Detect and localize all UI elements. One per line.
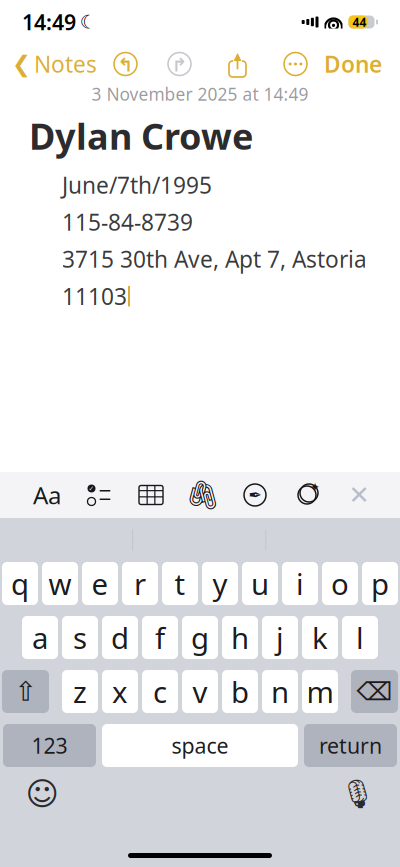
staticText: l — [356, 618, 364, 657]
button[interactable]: ⌫ — [351, 670, 398, 713]
staticText: June/7th/1995 — [62, 170, 212, 200]
button[interactable]: Table — [136, 477, 166, 513]
staticText: 🎙 — [340, 778, 376, 810]
button[interactable]: b — [222, 670, 258, 713]
staticText: Aa — [33, 479, 61, 511]
staticText: 14:49 — [22, 8, 76, 36]
button[interactable]: e — [82, 562, 118, 605]
button[interactable]: Attach — [188, 477, 218, 513]
staticText: m — [306, 672, 333, 711]
staticText: return — [319, 731, 382, 760]
button[interactable]: a — [22, 616, 58, 659]
button[interactable]: Checklist — [84, 477, 114, 513]
staticText: space — [171, 731, 228, 760]
staticText: q — [11, 564, 29, 603]
staticText: t — [174, 564, 185, 603]
staticText: ☺ — [25, 776, 58, 812]
button[interactable]: z — [62, 670, 98, 713]
staticText: ☾ — [80, 11, 97, 33]
staticText: ▲ — [233, 50, 241, 62]
staticText: c — [153, 672, 167, 711]
button[interactable]: q — [2, 562, 38, 605]
button[interactable]: ⇧ — [2, 670, 49, 713]
button[interactable]: n — [262, 670, 298, 713]
staticText: b — [231, 672, 249, 711]
button[interactable]: 123 — [3, 724, 96, 767]
button[interactable]: Format — [32, 477, 62, 513]
staticText: 11103 — [62, 281, 127, 311]
button[interactable]: y — [202, 562, 238, 605]
staticText: y — [212, 564, 227, 603]
staticText: ↰ — [117, 54, 133, 76]
button[interactable]: c — [142, 670, 178, 713]
staticText: f — [155, 618, 165, 657]
button[interactable]: p — [362, 562, 398, 605]
button[interactable]: t — [162, 562, 198, 605]
button[interactable]: i — [282, 562, 318, 605]
button[interactable]: Undo — [107, 51, 143, 77]
staticText: d — [111, 618, 129, 657]
button[interactable]: m — [302, 670, 338, 713]
staticText: k — [312, 618, 328, 657]
staticText: 3 November 2025 at 14:49 — [91, 82, 308, 105]
button[interactable]: ❮ — [0, 43, 97, 85]
staticText: ❮ — [12, 51, 31, 77]
button[interactable]: Redo — [161, 51, 197, 77]
staticText: g — [191, 618, 209, 657]
staticText: a — [32, 618, 48, 657]
button[interactable]: r — [122, 562, 158, 605]
button[interactable]: x — [102, 670, 138, 713]
staticText: ✓ — [88, 485, 94, 492]
staticText: 🖇 — [185, 479, 221, 511]
staticText: ✒ — [248, 486, 261, 504]
button[interactable]: Done — [324, 43, 400, 85]
button[interactable]: Writing Tools — [292, 477, 322, 513]
staticText: 115-84-8739 — [62, 207, 193, 237]
staticText: 44 — [352, 14, 366, 30]
staticText: ✕ — [348, 481, 369, 509]
staticText: j — [276, 618, 284, 657]
button[interactable]: Share — [219, 50, 255, 77]
button[interactable]: Close keyboard — [344, 477, 374, 513]
button[interactable]: u — [242, 562, 278, 605]
staticText: p — [371, 564, 389, 603]
staticText: Notes — [34, 49, 97, 79]
staticText: ↱ — [171, 54, 187, 76]
button[interactable]: Dictate — [338, 777, 378, 811]
staticText: ⌫ — [356, 677, 392, 706]
button[interactable]: v — [182, 670, 218, 713]
staticText: e — [91, 564, 108, 603]
staticText: w — [48, 564, 71, 603]
button[interactable]: return — [304, 724, 397, 767]
staticText: u — [251, 564, 269, 603]
button[interactable]: w — [42, 562, 78, 605]
staticText: n — [271, 672, 289, 711]
staticText: 3715 30th Ave, Apt 7, Astoria — [62, 244, 367, 274]
staticText: z — [73, 672, 87, 711]
button[interactable]: space — [102, 724, 298, 767]
staticText: o — [331, 564, 349, 603]
staticText: i — [296, 564, 304, 603]
button[interactable]: d — [102, 616, 138, 659]
button[interactable]: More — [277, 51, 313, 77]
staticText: 123 — [31, 731, 67, 760]
button[interactable]: Emoji — [22, 777, 62, 811]
staticText: v — [192, 672, 207, 711]
staticText: h — [231, 618, 249, 657]
staticText: Done — [324, 49, 382, 79]
staticText: s — [73, 618, 87, 657]
button[interactable]: j — [262, 616, 298, 659]
button[interactable]: s — [62, 616, 98, 659]
button[interactable]: o — [322, 562, 358, 605]
button[interactable]: k — [302, 616, 338, 659]
staticText: ✦ — [310, 480, 320, 494]
button[interactable]: h — [222, 616, 258, 659]
button[interactable]: f — [142, 616, 178, 659]
staticText: Dylan Crowe — [29, 112, 253, 160]
staticText: x — [112, 672, 128, 711]
staticText: ⇧ — [14, 676, 36, 707]
staticText: r — [134, 564, 146, 603]
button[interactable]: Markup — [240, 477, 270, 513]
button[interactable]: l — [342, 616, 378, 659]
button[interactable]: g — [182, 616, 218, 659]
